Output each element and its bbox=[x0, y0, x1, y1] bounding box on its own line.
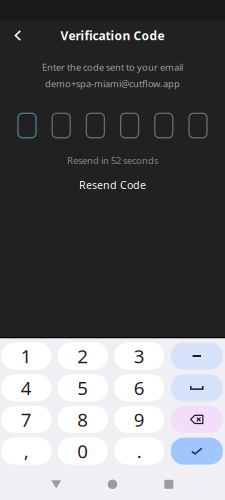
staticText: 7 bbox=[21, 407, 32, 432]
button[interactable]: Digit 4 bbox=[121, 113, 139, 138]
staticText: 5 bbox=[77, 375, 88, 400]
button[interactable]: Back bbox=[4, 22, 32, 48]
button[interactable]: Digit 3 bbox=[86, 113, 104, 138]
staticText: 1 bbox=[21, 344, 32, 368]
button[interactable]: 9 bbox=[114, 406, 164, 433]
button[interactable]: Resend Code bbox=[79, 178, 146, 192]
staticText: 0 bbox=[77, 439, 88, 463]
button[interactable]: Space bbox=[171, 374, 223, 401]
button[interactable]: Enter bbox=[171, 438, 223, 465]
button[interactable]: , bbox=[1, 438, 51, 465]
button[interactable]: Back bbox=[28, 471, 84, 497]
button[interactable]: Dash bbox=[171, 342, 223, 369]
button[interactable]: 5 bbox=[58, 374, 108, 401]
staticText: 3 bbox=[134, 344, 145, 368]
staticText: Resend in 52 seconds bbox=[67, 154, 158, 167]
button[interactable]: 4 bbox=[1, 374, 51, 401]
button[interactable]: 1 bbox=[1, 342, 51, 369]
staticText: . bbox=[137, 439, 142, 463]
button[interactable]: . bbox=[114, 438, 164, 465]
button[interactable]: Digit 2 bbox=[52, 113, 70, 138]
button[interactable]: Home bbox=[84, 471, 141, 497]
button[interactable]: Delete bbox=[171, 406, 223, 433]
staticText: 9 bbox=[134, 407, 145, 432]
button[interactable]: 0 bbox=[58, 438, 108, 465]
staticText: , bbox=[24, 439, 29, 463]
button[interactable]: 6 bbox=[114, 374, 164, 401]
staticText: 8 bbox=[77, 407, 88, 432]
button[interactable]: Recent apps bbox=[141, 471, 197, 497]
staticText: demo+spa-miami@cutflow.app bbox=[45, 77, 180, 90]
staticText: 4 bbox=[21, 375, 32, 400]
button[interactable]: 2 bbox=[58, 342, 108, 369]
button[interactable]: Digit 5 bbox=[155, 113, 173, 138]
staticText: 2 bbox=[77, 344, 88, 368]
button[interactable]: 7 bbox=[1, 406, 51, 433]
button[interactable]: Digit 6 bbox=[189, 113, 207, 138]
staticText: Resend Code bbox=[79, 178, 146, 192]
button[interactable]: 3 bbox=[114, 342, 164, 369]
staticText: Verification Code bbox=[60, 27, 164, 43]
staticText: Enter the code sent to your email bbox=[42, 61, 183, 73]
button[interactable]: 8 bbox=[58, 406, 108, 433]
button[interactable]: Digit 1 bbox=[18, 113, 36, 138]
staticText: 6 bbox=[134, 375, 145, 400]
